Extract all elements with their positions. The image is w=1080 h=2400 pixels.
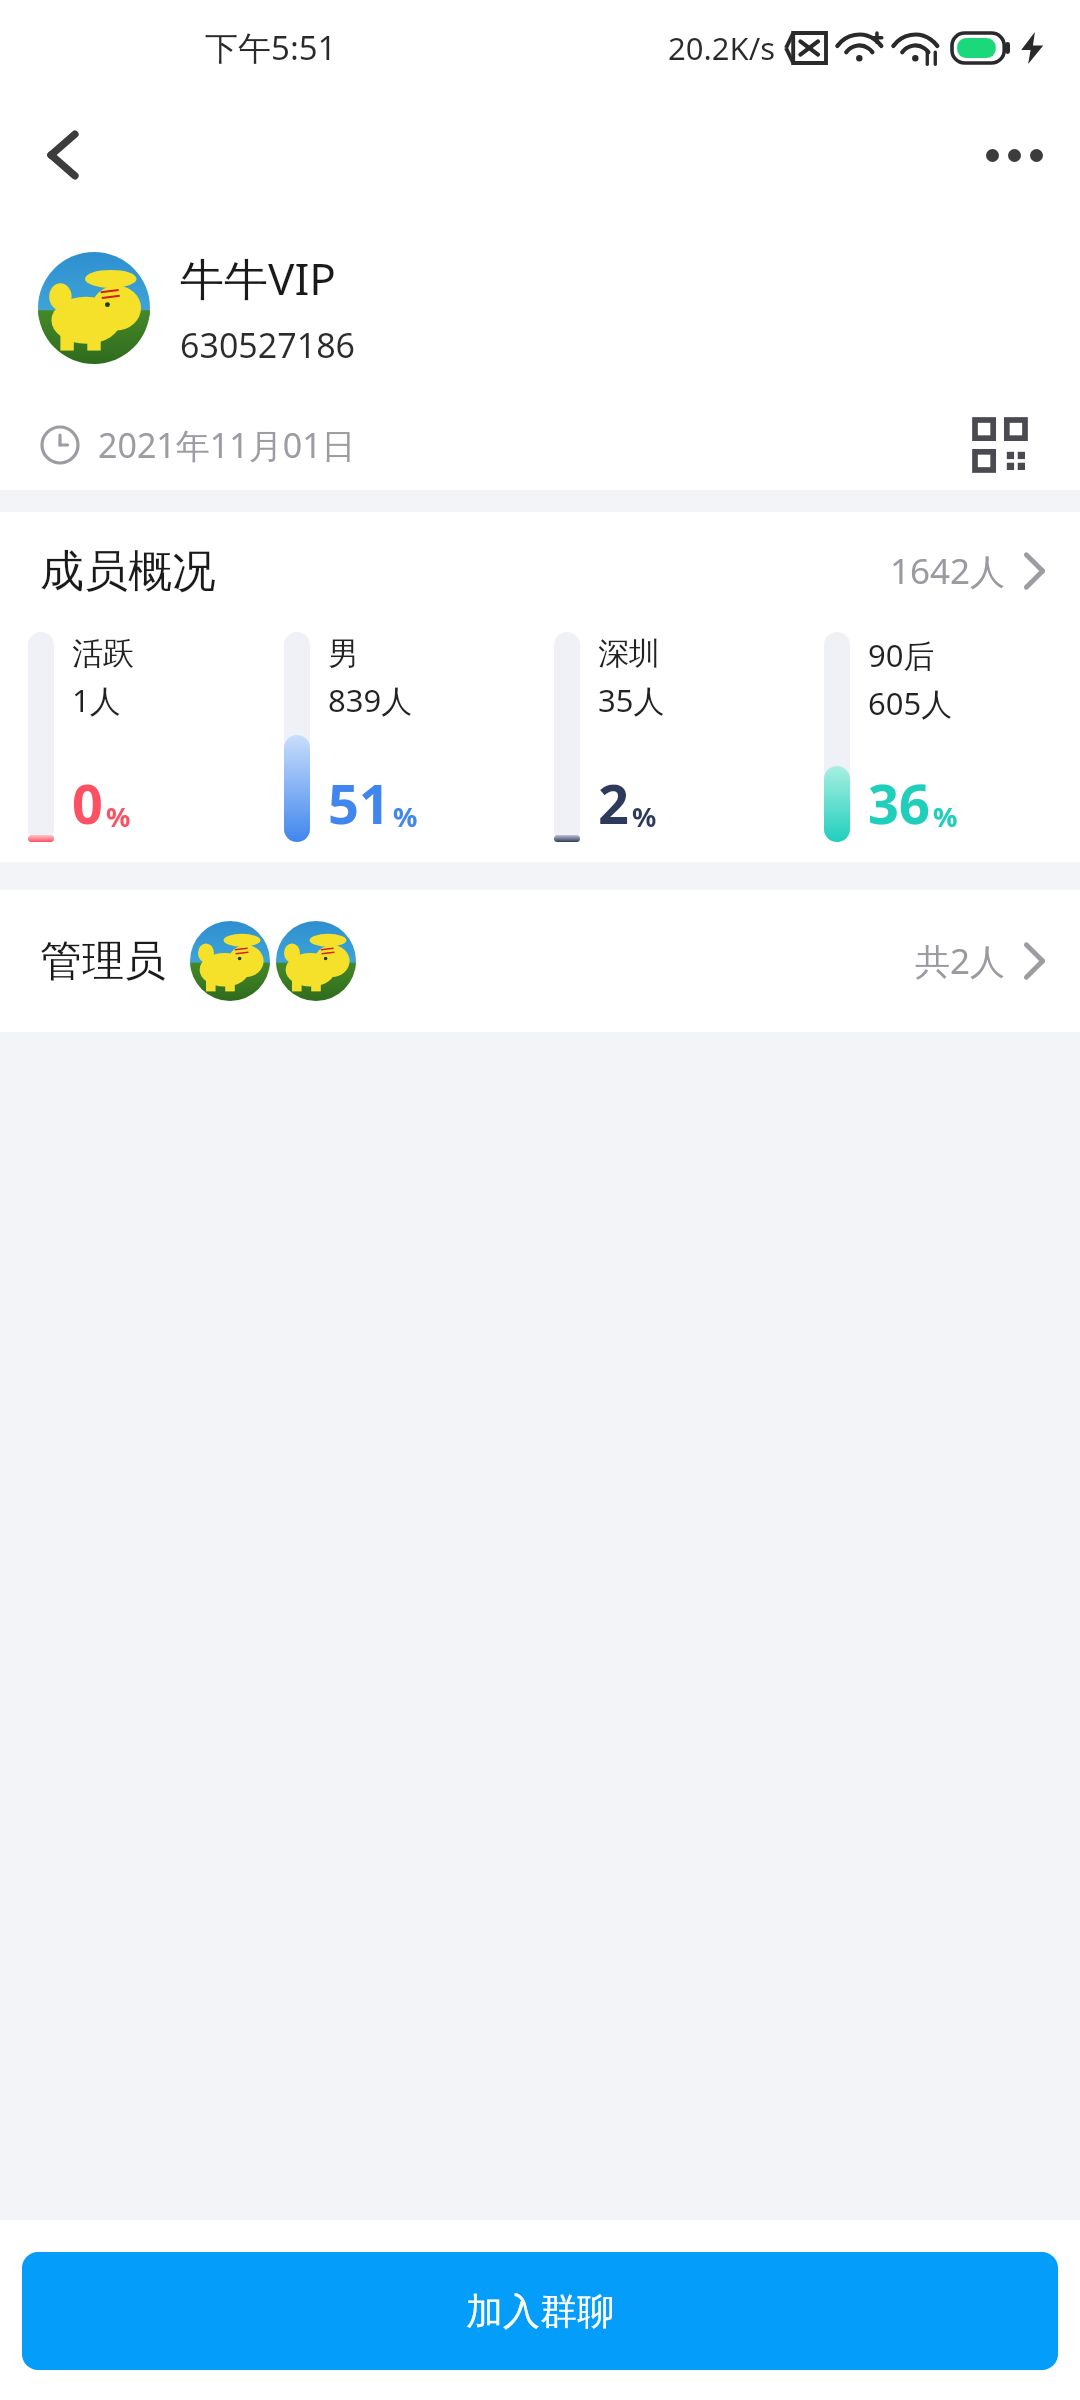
staticText: 1人 — [72, 679, 121, 721]
staticText: % — [933, 798, 958, 835]
staticText: 牛牛VIP — [180, 248, 336, 308]
staticText: 630527186 — [180, 322, 356, 368]
staticText: 成员概况 — [40, 544, 216, 599]
button[interactable]: 成员概况 — [0, 512, 1080, 630]
button[interactable]: QR code — [960, 405, 1040, 485]
staticText: % — [632, 798, 657, 835]
staticText: % — [106, 798, 131, 835]
staticText: 36 — [868, 766, 930, 840]
staticText: 839人 — [328, 679, 413, 721]
staticText: 605人 — [868, 682, 953, 724]
staticText: 35人 — [598, 679, 665, 721]
staticText: 90后 — [868, 634, 935, 676]
staticText: 深圳 — [598, 634, 660, 673]
staticText: 20.2K/s — [668, 27, 776, 69]
staticText: 下午5:51 — [205, 25, 337, 70]
staticText: 加入群聊 — [466, 2288, 614, 2335]
staticText: 0 — [72, 766, 103, 840]
staticText: 管理员 — [40, 935, 166, 988]
staticText: 共2人 — [915, 937, 1006, 985]
staticText: 51 — [328, 766, 390, 840]
button[interactable]: 牛牛VIP — [0, 215, 1080, 400]
button[interactable]: Back — [20, 111, 108, 199]
button[interactable]: 管理员 — [0, 890, 1080, 1032]
staticText: 2021年11月01日 — [98, 422, 356, 468]
staticText: % — [393, 798, 418, 835]
staticText: 男 — [328, 634, 359, 673]
staticText: 活跃 — [72, 634, 134, 673]
staticText: 1642人 — [890, 547, 1006, 595]
button[interactable]: More options — [970, 111, 1058, 199]
button[interactable]: 加入群聊 — [22, 2252, 1058, 2370]
staticText: 2 — [598, 766, 629, 840]
